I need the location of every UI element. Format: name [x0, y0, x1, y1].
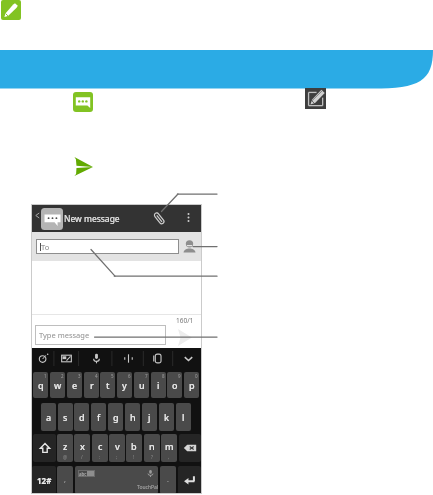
button[interactable]: Space — [75, 466, 158, 494]
staticText: 12# — [37, 475, 52, 486]
staticText: 0 — [195, 373, 198, 379]
staticText: 8 — [162, 373, 165, 379]
staticText: t — [106, 379, 110, 391]
button[interactable]: Period — [160, 466, 176, 494]
button[interactable]: Numbers and symbols — [32, 466, 56, 494]
button[interactable]: Settings — [117, 348, 139, 369]
button[interactable]: l — [176, 403, 191, 431]
staticText: s — [63, 411, 68, 423]
button[interactable]: g — [108, 403, 123, 431]
staticText: ! — [133, 454, 135, 460]
button[interactable]: k — [159, 403, 174, 431]
button[interactable]: Enter — [178, 466, 201, 494]
staticText: c — [98, 440, 103, 452]
staticText: x — [80, 440, 85, 452]
staticText: 2 — [61, 373, 64, 379]
button[interactable]: i — [151, 372, 166, 398]
staticText: ? — [151, 454, 153, 460]
button[interactable]: To — [36, 239, 179, 254]
staticText: 4 — [95, 373, 98, 379]
staticText: q — [38, 379, 44, 391]
button[interactable]: q — [33, 372, 48, 398]
button[interactable]: Back — [35, 213, 40, 218]
staticText: u — [139, 379, 145, 391]
staticText: p — [189, 379, 195, 391]
staticText: abc — [79, 471, 87, 477]
staticText: l — [182, 411, 185, 423]
staticText: : — [99, 454, 101, 460]
button[interactable]: a — [41, 403, 56, 431]
staticText: n — [149, 440, 155, 452]
button[interactable]: Attach — [152, 211, 167, 226]
button[interactable]: z — [57, 434, 73, 462]
staticText: d — [79, 411, 85, 423]
staticText: 3 — [78, 373, 81, 379]
button[interactable]: e — [67, 372, 82, 398]
staticText: ; — [116, 454, 118, 460]
staticText: a — [46, 411, 52, 423]
staticText: z — [63, 440, 68, 452]
staticText: y — [122, 379, 127, 391]
staticText: 6 — [128, 373, 131, 379]
button[interactable]: Comma — [57, 466, 73, 494]
staticText: / — [81, 454, 83, 460]
staticText: @ — [63, 454, 68, 460]
button[interactable]: j — [142, 403, 157, 431]
staticText: f — [97, 411, 101, 423]
staticText: o — [172, 379, 178, 391]
staticText: 5 — [111, 373, 114, 379]
staticText: 7 — [145, 373, 148, 379]
staticText: . — [167, 475, 169, 485]
button[interactable]: p — [184, 372, 199, 398]
button[interactable]: v — [109, 434, 125, 462]
button[interactable]: c — [92, 434, 108, 462]
button[interactable]: Send — [74, 157, 93, 176]
button[interactable]: h — [125, 403, 140, 431]
button[interactable]: t — [100, 372, 115, 398]
staticText: i — [157, 379, 160, 391]
button[interactable]: Clipboard — [146, 348, 168, 369]
button[interactable]: More options — [183, 212, 194, 223]
button[interactable]: New message — [305, 88, 326, 109]
staticText: 1 — [44, 373, 47, 379]
staticText: m — [165, 440, 174, 452]
staticText: TouchPal — [137, 484, 158, 491]
button[interactable]: w — [50, 372, 65, 398]
staticText: j — [148, 411, 151, 423]
button[interactable]: d — [74, 403, 89, 431]
button[interactable]: Backspace — [179, 434, 201, 462]
staticText: New message — [64, 213, 120, 225]
button[interactable]: Emoji — [32, 348, 54, 369]
staticText: w — [54, 379, 62, 391]
button[interactable]: Messaging — [73, 92, 93, 112]
staticText: v — [115, 440, 120, 452]
button[interactable]: Hide keyboard — [177, 348, 199, 369]
button[interactable]: Shift — [33, 434, 56, 462]
staticText: g — [113, 411, 119, 423]
staticText: h — [130, 411, 136, 423]
button[interactable]: Voice input — [85, 348, 107, 369]
staticText: 160/1 — [176, 316, 194, 325]
button[interactable]: Compose message — [1, 0, 21, 20]
button[interactable]: o — [167, 372, 182, 398]
staticText: r — [90, 379, 94, 391]
staticText: To — [41, 242, 50, 252]
button[interactable]: r — [84, 372, 99, 398]
button[interactable]: s — [58, 403, 73, 431]
staticText: e — [72, 379, 78, 391]
button[interactable]: m — [161, 434, 177, 462]
button[interactable]: f — [91, 403, 106, 431]
button[interactable]: Type message — [35, 325, 166, 345]
staticText: 9 — [178, 373, 181, 379]
button[interactable]: n — [144, 434, 160, 462]
button[interactable]: Choose contact — [182, 239, 197, 254]
button[interactable]: x — [74, 434, 90, 462]
button[interactable]: b — [126, 434, 142, 462]
button[interactable]: Themes — [55, 348, 77, 369]
staticText: b — [131, 440, 137, 452]
button[interactable]: u — [134, 372, 149, 398]
button[interactable]: y — [117, 372, 132, 398]
staticText: , — [168, 454, 170, 460]
staticText: k — [164, 411, 170, 423]
staticText: Type message — [39, 330, 90, 340]
